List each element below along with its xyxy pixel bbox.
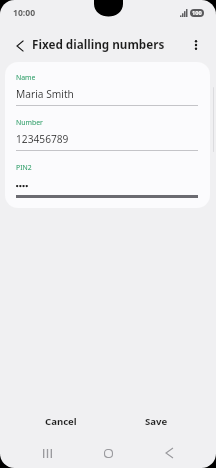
staticText: Cancel <box>45 415 77 428</box>
staticText: Fixed dialling numbers <box>32 36 165 52</box>
staticText: 123456789 <box>16 132 69 146</box>
button[interactable]: Number <box>5 106 210 151</box>
staticText: Name <box>16 73 36 82</box>
staticText: 10:00 <box>13 7 36 19</box>
button[interactable]: Cancel <box>24 407 97 435</box>
staticText: Number <box>16 118 43 127</box>
button[interactable]: More options <box>183 32 209 58</box>
button[interactable]: Save <box>120 407 192 435</box>
staticText: 100 <box>192 9 202 17</box>
staticText: Save <box>145 415 168 428</box>
button[interactable]: Name <box>5 62 210 106</box>
button[interactable]: Navigate up <box>7 33 33 59</box>
button[interactable]: PIN2 <box>5 151 210 198</box>
button[interactable]: Home <box>80 440 136 468</box>
staticText: PIN2 <box>16 163 32 172</box>
button[interactable]: Back <box>141 440 197 468</box>
staticText: Maria Smith <box>16 87 74 101</box>
button[interactable]: Recent apps <box>19 440 75 468</box>
